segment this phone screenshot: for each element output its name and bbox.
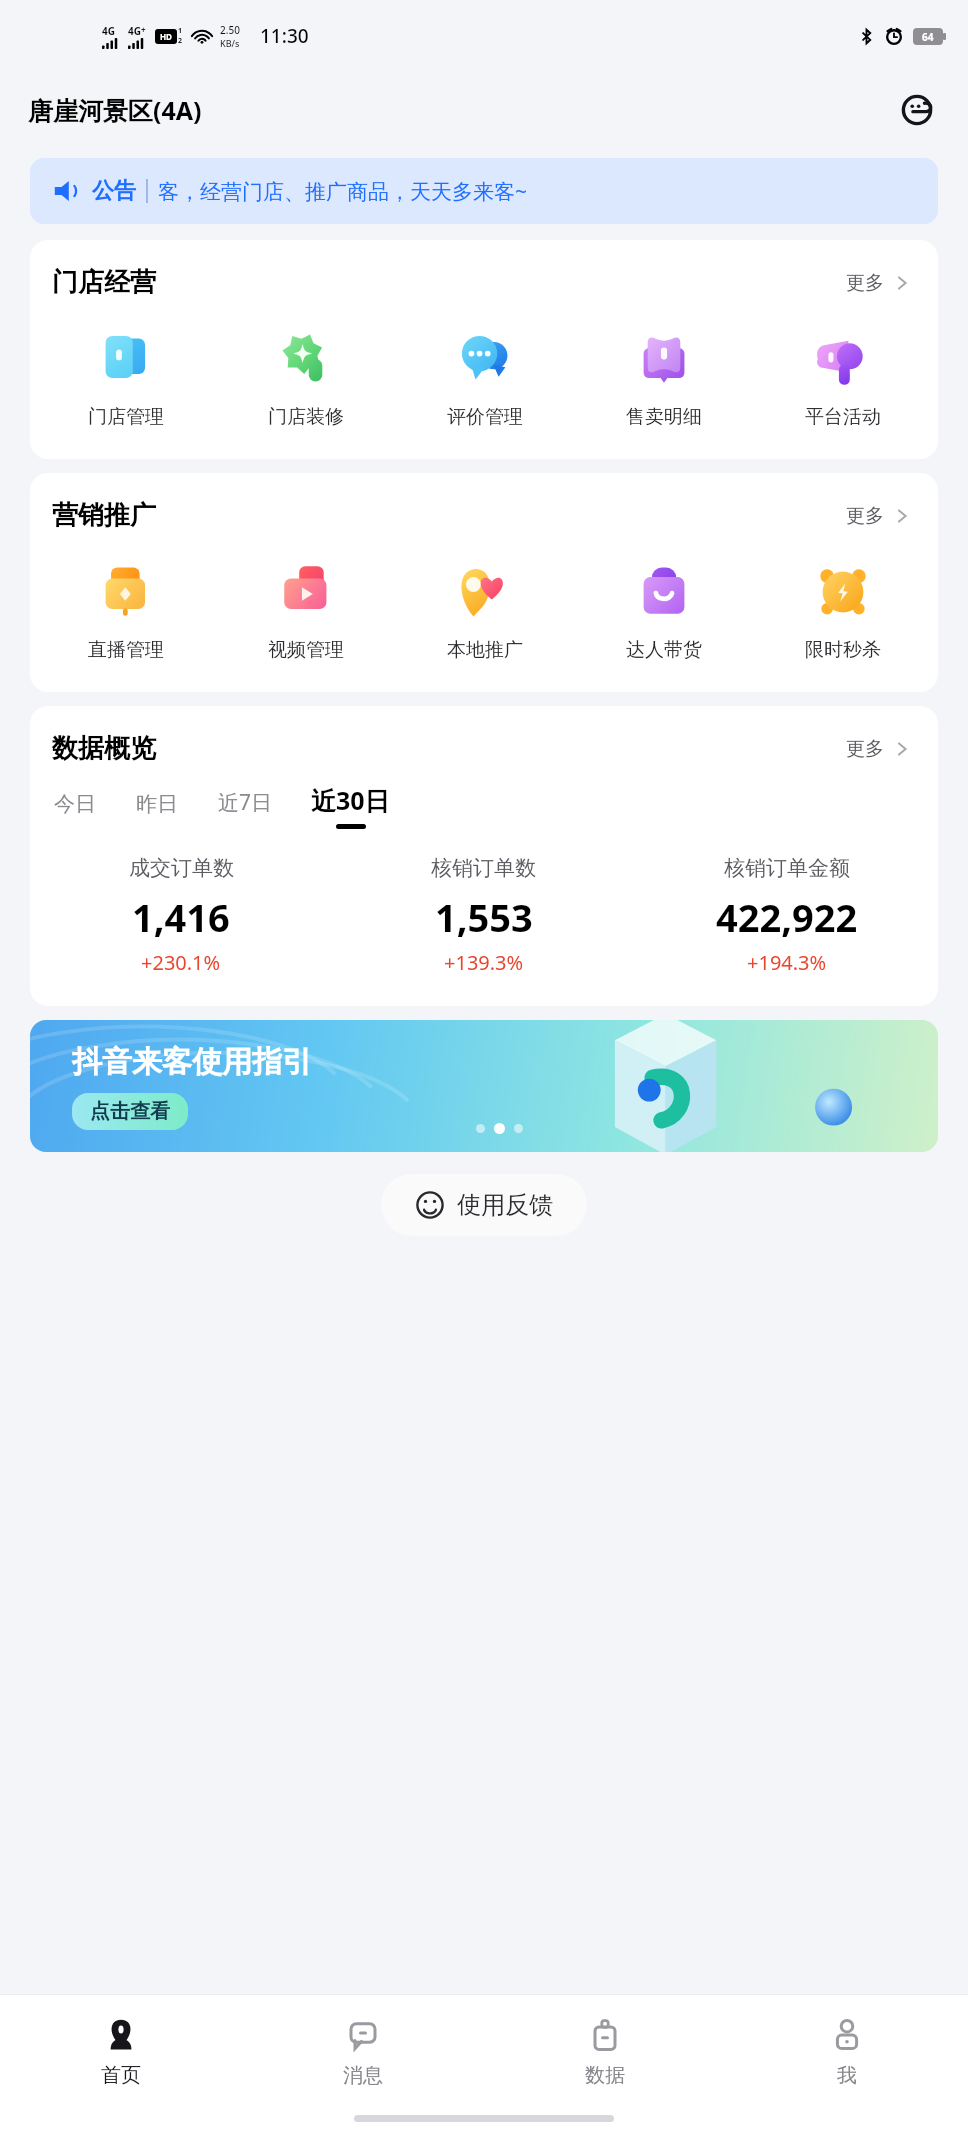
staticText: 首页: [101, 2063, 141, 2088]
button[interactable]: 门店管理: [36, 321, 216, 433]
staticText: KB/s: [220, 37, 240, 49]
staticText: 核销订单金额: [724, 855, 850, 881]
button[interactable]: 公告: [30, 158, 938, 224]
button[interactable]: 数据: [484, 1995, 726, 2107]
staticText: 平台活动: [805, 405, 881, 429]
staticText: 限时秒杀: [805, 638, 881, 662]
staticText: 更多: [846, 737, 884, 761]
button[interactable]: 核销订单金额: [635, 855, 938, 976]
staticText: 我: [837, 2063, 857, 2088]
staticText: 64: [922, 30, 934, 44]
staticText: 本地推广: [447, 638, 523, 662]
staticText: 1,553: [435, 891, 533, 943]
staticText: 422,922: [716, 891, 858, 943]
button[interactable]: 核销订单数: [332, 855, 635, 976]
staticText: +194.3%: [747, 949, 827, 976]
button[interactable]: 近30日: [309, 783, 392, 829]
staticText: 核销订单数: [431, 855, 536, 881]
staticText: 抖音来客使用指引: [72, 1043, 312, 1081]
staticText: +139.3%: [444, 949, 524, 976]
button[interactable]: 我: [726, 1995, 968, 2107]
staticText: 近30日: [311, 783, 390, 817]
staticText: +230.1%: [141, 949, 221, 976]
staticText: 成交订单数: [129, 855, 234, 881]
button[interactable]: 门店装修: [216, 321, 395, 433]
button[interactable]: 点击查看: [72, 1093, 188, 1130]
staticText: 公告: [92, 177, 136, 205]
button[interactable]: 抖音来客使用指引: [30, 1020, 938, 1152]
button[interactable]: 消息: [242, 1995, 484, 2107]
staticText: 点击查看: [90, 1099, 170, 1124]
staticText: 2: [178, 36, 183, 46]
button[interactable]: 更多: [842, 267, 916, 299]
button[interactable]: 更多: [842, 500, 916, 532]
button[interactable]: 今日: [52, 791, 98, 829]
staticText: 更多: [846, 271, 884, 295]
staticText: 营销推广: [52, 499, 156, 532]
staticText: 1,416: [132, 891, 230, 943]
staticText: 达人带货: [626, 638, 702, 662]
staticText: 4G: [102, 24, 115, 38]
button[interactable]: 使用反馈: [381, 1174, 587, 1236]
button[interactable]: 本地推广: [395, 554, 574, 666]
button[interactable]: 售卖明细: [574, 321, 753, 433]
staticText: 客，经营门店、推广商品，天天多来客~: [158, 177, 528, 206]
staticText: 门店管理: [88, 405, 164, 429]
staticText: +: [141, 24, 146, 35]
button[interactable]: 昨日: [134, 791, 180, 829]
staticText: 门店经营: [52, 266, 156, 299]
button[interactable]: 成交订单数: [30, 855, 332, 976]
staticText: 直播管理: [88, 638, 164, 662]
staticText: 使用反馈: [457, 1190, 553, 1220]
staticText: 视频管理: [268, 638, 344, 662]
staticText: 4G: [128, 24, 141, 38]
staticText: 2.50: [220, 23, 240, 37]
button[interactable]: 客服: [896, 87, 942, 133]
staticText: 唐崖河景区(4A): [28, 93, 202, 127]
staticText: 门店装修: [268, 405, 344, 429]
button[interactable]: 达人带货: [574, 554, 753, 666]
button[interactable]: 首页: [0, 1995, 242, 2107]
staticText: 数据概览: [52, 732, 156, 765]
button[interactable]: 直播管理: [36, 554, 216, 666]
staticText: 今日: [54, 791, 96, 817]
staticText: 评价管理: [447, 405, 523, 429]
button[interactable]: 限时秒杀: [753, 554, 932, 666]
staticText: 昨日: [136, 791, 178, 817]
button[interactable]: 评价管理: [395, 321, 574, 433]
staticText: 售卖明细: [626, 405, 702, 429]
button[interactable]: 视频管理: [216, 554, 395, 666]
staticText: 1: [178, 26, 183, 36]
button[interactable]: 平台活动: [753, 321, 932, 433]
staticText: HD: [160, 31, 172, 42]
staticText: 更多: [846, 504, 884, 528]
staticText: 数据: [585, 2063, 625, 2088]
staticText: 近7日: [218, 788, 273, 817]
button[interactable]: 更多: [842, 733, 916, 765]
button[interactable]: 近7日: [216, 788, 275, 829]
staticText: 11:30: [260, 23, 309, 49]
staticText: 消息: [343, 2063, 383, 2088]
